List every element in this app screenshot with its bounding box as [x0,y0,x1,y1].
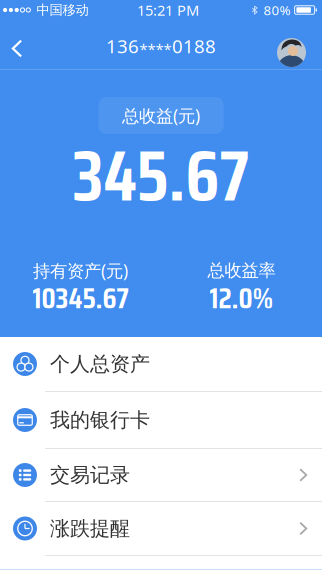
staticText: 交易记录 [50,463,130,487]
button[interactable]: 我的银行卡 [0,392,322,449]
staticText: 总收益率 [207,260,275,281]
staticText: **** [139,39,171,59]
staticText: 80% [264,1,291,19]
button[interactable]: 涨跌提醒 [0,502,322,556]
button[interactable] [0,20,34,69]
button[interactable]: 个人总资产 [0,337,322,392]
staticText: 345.67 [72,120,249,232]
button[interactable] [277,30,322,59]
staticText: 136 [106,34,139,58]
staticText: 12.0% [209,275,273,321]
staticText: 我的银行卡 [50,408,150,432]
staticText: 个人总资产 [50,352,150,376]
staticText: 总收益(元) [122,104,200,127]
staticText: 15:21 PM [137,0,199,20]
staticText: 0188 [172,34,216,58]
staticText: 涨跌提醒 [50,516,130,541]
button[interactable]: 交易记录 [0,449,322,502]
staticText: 中国移动 [36,2,88,18]
staticText: 持有资产(元) [33,259,128,282]
staticText: 10345.67 [32,275,128,321]
